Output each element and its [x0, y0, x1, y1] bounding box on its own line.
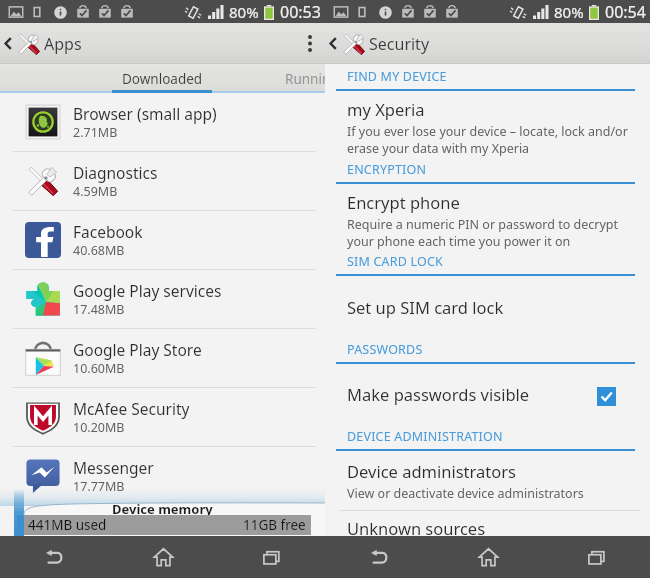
staticText: ENCRYPTION — [347, 161, 427, 178]
staticText: PASSWORDS — [347, 341, 423, 358]
button[interactable]: Device administrators — [325, 451, 650, 511]
button[interactable]: Make passwords visible — [325, 364, 650, 428]
button[interactable]: Facebook — [0, 211, 325, 270]
staticText: Diagnostics — [73, 162, 158, 183]
staticText: Browser (small app) — [73, 103, 217, 124]
button[interactable]: Encrypt phone — [325, 184, 650, 253]
staticText: 17.77MB — [73, 478, 125, 495]
button[interactable]: Running — [262, 64, 362, 93]
button[interactable]: Home — [434, 536, 542, 578]
staticText: 80% — [229, 2, 259, 22]
staticText: Facebook — [73, 221, 143, 242]
staticText: DEVICE ADMINISTRATION — [347, 428, 503, 445]
button[interactable]: Recent apps — [542, 536, 650, 578]
button[interactable]: Apps — [0, 23, 82, 64]
staticText: Security — [369, 33, 430, 55]
staticText: 40.68MB — [73, 242, 125, 259]
staticText: 2.71MB — [73, 124, 118, 141]
staticText: Messenger — [73, 457, 154, 478]
staticText: Google Play Store — [73, 339, 202, 360]
staticText: 10.60MB — [73, 360, 125, 377]
staticText: Unknown sources — [347, 517, 486, 536]
button[interactable]: Back — [325, 536, 434, 578]
staticText: 441MB used — [28, 516, 107, 534]
staticText: Google Play services — [73, 280, 222, 301]
staticText: 17.48MB — [73, 301, 125, 318]
staticText: my Xperia — [347, 98, 425, 120]
staticText: Set up SIM card lock — [347, 296, 504, 318]
button[interactable]: Google Play services — [0, 270, 325, 329]
staticText: Encrypt phone — [347, 191, 460, 213]
button[interactable]: McAfee Security — [0, 388, 325, 447]
staticText: 11GB free — [243, 516, 306, 534]
button[interactable]: my Xperia — [325, 91, 650, 161]
button[interactable]: Recent apps — [217, 536, 325, 578]
button[interactable]: Unknown sources — [325, 511, 650, 536]
staticText: 00:53 — [280, 1, 321, 23]
staticText: If you ever lose your device – locate, l… — [347, 123, 628, 156]
button[interactable]: Home — [109, 536, 217, 578]
staticText: View or deactivate device administrators — [347, 485, 584, 502]
staticText: Make passwords visible — [347, 383, 530, 405]
staticText: 00:54 — [605, 1, 646, 23]
staticText: SIM CARD LOCK — [347, 253, 444, 270]
staticText: Apps — [44, 33, 82, 55]
staticText: 4.59MB — [73, 183, 118, 200]
staticText: Downloaded — [122, 70, 203, 88]
staticText: 80% — [554, 2, 584, 22]
staticText: McAfee Security — [73, 398, 190, 419]
button[interactable]: Google Play Store — [0, 329, 325, 388]
button[interactable]: Messenger — [0, 447, 325, 506]
button[interactable]: More options — [295, 23, 325, 64]
staticText: 10.20MB — [73, 419, 125, 436]
staticText: Require a numeric PIN or password to dec… — [347, 216, 619, 249]
staticText: Running — [285, 70, 339, 88]
button[interactable]: Security — [325, 23, 430, 64]
staticText: Device memory — [112, 500, 213, 518]
button[interactable]: Browser (small app) — [0, 93, 325, 152]
button[interactable]: Back — [0, 536, 109, 578]
button[interactable]: Downloaded — [112, 64, 212, 93]
button[interactable]: Set up SIM card lock — [325, 276, 650, 341]
button[interactable]: Diagnostics — [0, 152, 325, 211]
staticText: Device administrators — [347, 460, 516, 482]
staticText: FIND MY DEVICE — [347, 68, 447, 85]
